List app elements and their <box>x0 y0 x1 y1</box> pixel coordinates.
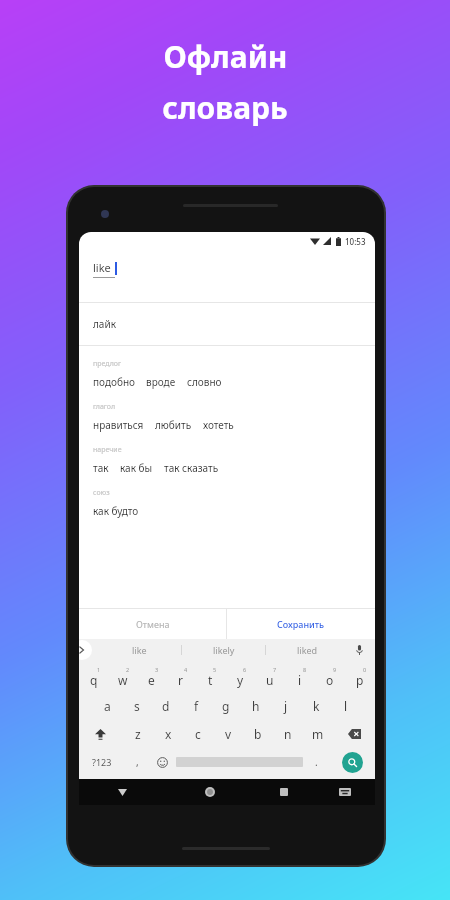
button[interactable]: нравиться <box>93 418 144 432</box>
button[interactable]: f <box>181 692 211 720</box>
button[interactable]: like <box>97 639 181 661</box>
button[interactable]: s <box>122 692 151 720</box>
button[interactable]: Switch keyboard <box>314 779 375 805</box>
staticText: h <box>252 698 260 714</box>
button[interactable]: . <box>303 748 330 776</box>
staticText: , <box>136 755 139 769</box>
button[interactable]: a <box>93 692 122 720</box>
staticText: e <box>148 672 155 688</box>
staticText: 10:53 <box>345 236 366 247</box>
button[interactable]: k <box>301 692 331 720</box>
button[interactable]: 2 <box>108 664 137 692</box>
staticText: g <box>222 698 230 714</box>
staticText: i <box>298 672 302 688</box>
button[interactable]: v <box>213 720 243 748</box>
staticText: 3 <box>155 666 159 673</box>
staticText: подобно <box>93 375 135 389</box>
button[interactable]: liked <box>266 639 349 661</box>
staticText: liked <box>297 644 318 656</box>
button[interactable]: 6 <box>225 664 255 692</box>
button[interactable]: , <box>125 748 149 776</box>
button[interactable]: хотеть <box>203 418 234 432</box>
button[interactable]: 7 <box>255 664 285 692</box>
staticText: u <box>266 672 274 688</box>
staticText: c <box>195 726 201 742</box>
staticText: 9 <box>333 666 337 673</box>
staticText: like <box>132 644 147 656</box>
button[interactable]: Home <box>166 779 253 805</box>
button[interactable]: так <box>93 461 109 475</box>
staticText: Отмена <box>136 618 170 630</box>
button[interactable]: c <box>183 720 213 748</box>
button[interactable]: Back <box>79 779 166 805</box>
staticText: x <box>165 726 172 742</box>
button[interactable]: l <box>331 692 361 720</box>
staticText: y <box>237 672 244 688</box>
staticText: наречие <box>93 445 122 455</box>
staticText: o <box>326 672 334 688</box>
button[interactable]: Expand suggestions <box>79 640 92 660</box>
staticText: глагол <box>93 402 116 412</box>
button[interactable]: 8 <box>285 664 315 692</box>
staticText: словарь <box>162 87 288 128</box>
staticText: v <box>225 726 232 742</box>
staticText: n <box>284 726 292 742</box>
staticText: 0 <box>363 666 367 673</box>
staticText: z <box>135 726 141 742</box>
button[interactable]: словно <box>187 375 222 389</box>
button[interactable]: вроде <box>146 375 176 389</box>
staticText: s <box>134 698 140 714</box>
button[interactable]: ?123 <box>79 748 125 776</box>
staticText: 2 <box>126 666 130 673</box>
button[interactable]: g <box>211 692 241 720</box>
button[interactable]: h <box>241 692 271 720</box>
button[interactable]: likely <box>182 639 265 661</box>
button[interactable]: любить <box>155 418 192 432</box>
button[interactable]: так сказать <box>164 461 219 475</box>
button[interactable]: z <box>122 720 153 748</box>
staticText: так сказать <box>164 461 219 475</box>
staticText: словно <box>187 375 222 389</box>
button[interactable]: b <box>243 720 273 748</box>
button[interactable]: как бы <box>120 461 153 475</box>
button[interactable]: Отмена <box>79 609 226 639</box>
button[interactable]: m <box>303 720 333 748</box>
button[interactable]: 3 <box>137 664 166 692</box>
staticText: как будто <box>93 504 139 518</box>
staticText: p <box>356 672 364 688</box>
staticText: l <box>344 698 348 714</box>
staticText: ?123 <box>92 756 112 768</box>
staticText: предлог <box>93 359 122 369</box>
button[interactable]: Voice input <box>349 639 369 661</box>
staticText: 4 <box>184 666 188 673</box>
button[interactable]: x <box>153 720 183 748</box>
staticText: 6 <box>243 666 247 673</box>
staticText: b <box>254 726 262 742</box>
staticText: 7 <box>273 666 277 673</box>
button[interactable]: 9 <box>315 664 345 692</box>
staticText: любить <box>155 418 192 432</box>
button[interactable]: d <box>151 692 181 720</box>
button[interactable]: 1 <box>79 664 108 692</box>
button[interactable]: Backspace <box>333 720 375 748</box>
staticText: likely <box>213 644 235 656</box>
button[interactable]: Сохранить <box>227 609 375 639</box>
button[interactable]: Shift <box>79 720 122 748</box>
button[interactable]: Recents <box>253 779 314 805</box>
button[interactable]: Emoji <box>149 748 176 776</box>
button[interactable]: Search <box>330 748 375 776</box>
staticText: вроде <box>146 375 176 389</box>
staticText: хотеть <box>203 418 234 432</box>
button[interactable]: 4 <box>166 664 195 692</box>
button[interactable]: n <box>273 720 303 748</box>
button[interactable]: как будто <box>93 504 139 518</box>
button[interactable]: подобно <box>93 375 135 389</box>
button[interactable]: 5 <box>195 664 225 692</box>
button[interactable]: 0 <box>345 664 375 692</box>
staticText: q <box>90 672 98 688</box>
staticText: лайк <box>93 317 116 331</box>
staticText: t <box>208 672 213 688</box>
staticText: a <box>104 698 111 714</box>
button[interactable]: j <box>271 692 301 720</box>
